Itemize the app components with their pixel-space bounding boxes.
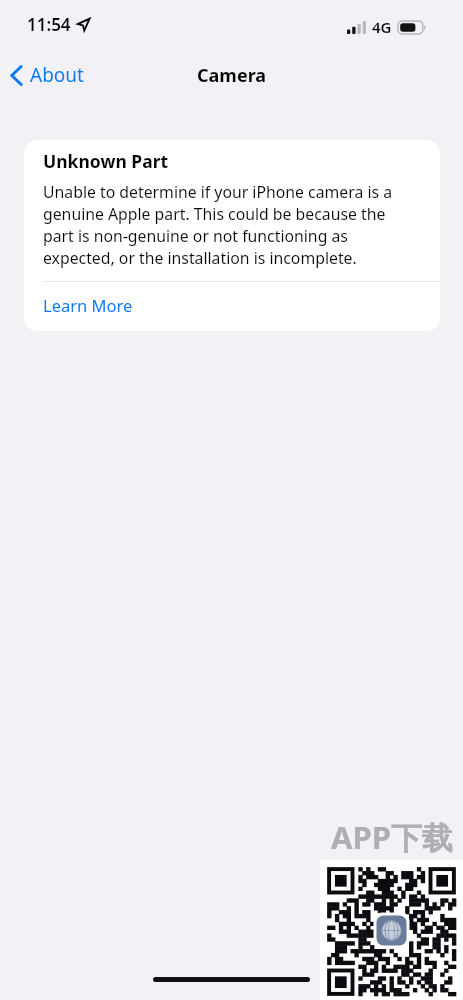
staticText: APP下载 [331,816,453,858]
staticText: About [30,62,84,88]
staticText: 11:54 [27,13,71,36]
staticText: Unknown Part [43,149,169,173]
button[interactable]: About [0,57,94,93]
staticText: Unable to determine if your iPhone camer… [43,181,393,269]
staticText: Camera [197,63,267,88]
staticText: Learn More [43,294,133,316]
button[interactable]: Learn More [24,282,440,331]
staticText: 4G [372,17,392,37]
